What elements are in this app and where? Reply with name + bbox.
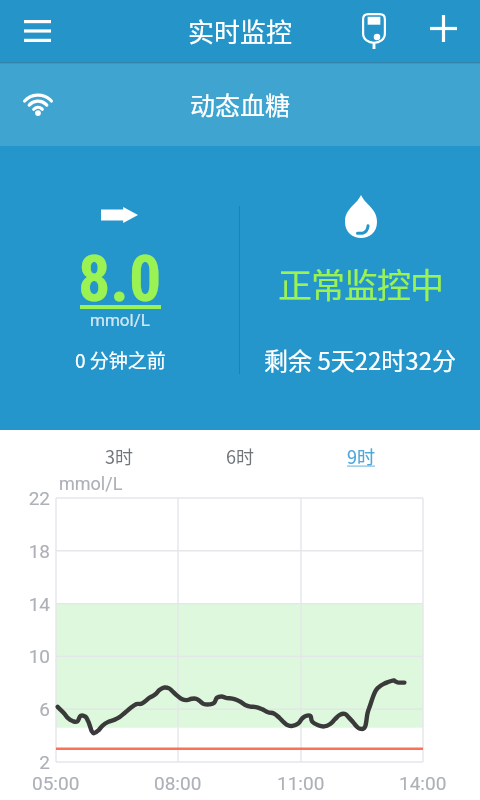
staticText: 11:00 [277,772,325,794]
staticText: 6 [0,698,50,720]
staticText: 18 [0,540,50,562]
staticText: 实时监控 [188,12,293,50]
staticText: 9时 [347,443,375,469]
button[interactable]: Signal strength [6,59,70,143]
staticText: 10 [0,645,50,667]
button[interactable]: Add [417,0,469,59]
staticText: 14 [0,593,50,615]
staticText: 2 [0,751,50,773]
staticText: 剩余 5天22时32分 [264,342,456,377]
staticText: 动态血糖 [190,86,291,122]
button[interactable]: Menu [5,0,69,62]
button[interactable]: 3时 [59,438,179,474]
staticText: 14:00 [399,772,447,794]
staticText: 05:00 [32,772,80,794]
staticText: mmol/L [59,473,123,494]
button[interactable]: Glucose meter [348,0,400,62]
staticText: 0 分钟之前 [75,346,166,374]
staticText: 6时 [226,443,254,469]
staticText: 22 [0,487,50,509]
button[interactable]: 6时 [179,438,300,474]
staticText: 正常监控中 [278,259,443,308]
staticText: mmol/L [90,310,150,330]
button[interactable]: 9时 [300,438,421,474]
staticText: 8.0 [78,242,162,317]
staticText: 08:00 [154,772,202,794]
staticText: 3时 [105,443,133,469]
